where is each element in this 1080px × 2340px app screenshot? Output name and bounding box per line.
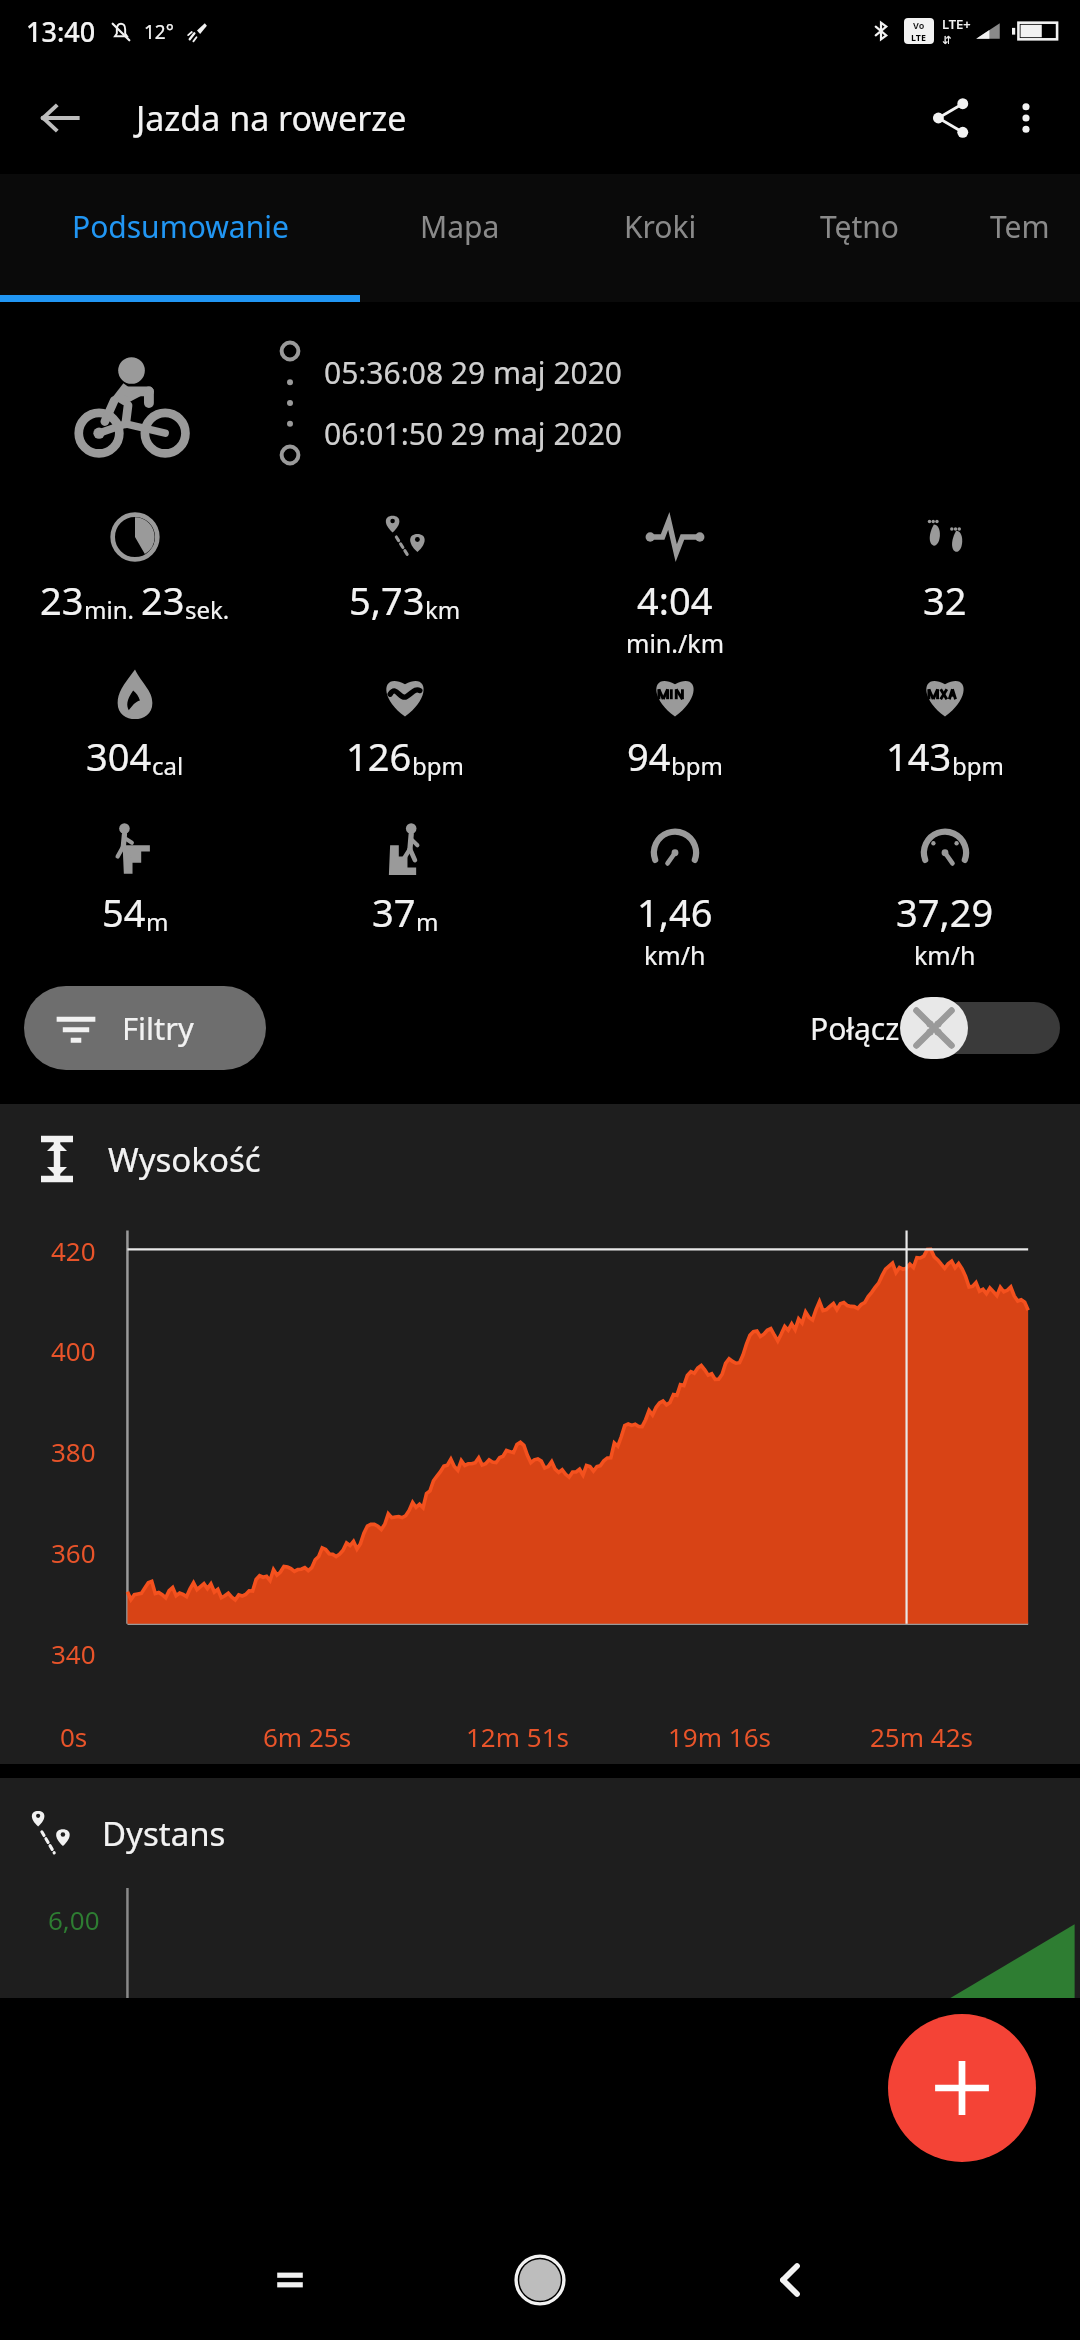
staticText: 23 [141, 574, 185, 626]
staticText: 19m 16s [668, 1719, 772, 1754]
button[interactable]: Mapa [360, 174, 560, 302]
staticText: 126 [346, 730, 412, 782]
staticText: Jazda na rowerze [136, 95, 407, 141]
staticText: 94 [627, 730, 671, 782]
staticText: 0s [60, 1719, 88, 1754]
button[interactable]: Home [480, 2220, 600, 2340]
button[interactable]: 37 [270, 810, 540, 966]
button[interactable]: Share [912, 79, 990, 157]
button[interactable]: 54 [0, 810, 270, 966]
staticText: 12m 51s [466, 1719, 570, 1754]
staticText: Vo [913, 19, 925, 31]
staticText: 05:36:08 29 maj 2020 [324, 352, 623, 393]
staticText: 13:40 [26, 13, 96, 50]
staticText: 06:01:50 29 maj 2020 [324, 413, 623, 454]
staticText: 5,73 [349, 574, 425, 626]
staticText: min./km [626, 626, 725, 654]
staticText: km/h [644, 938, 706, 966]
staticText: Podsumowanie [72, 206, 289, 247]
button[interactable]: 143 [810, 654, 1080, 810]
staticText: 143 [886, 730, 952, 782]
staticText: Połącz [810, 1008, 900, 1049]
button[interactable]: 5,73 [270, 498, 540, 654]
button[interactable]: 304 [0, 654, 270, 810]
staticText: 340 [51, 1636, 96, 1671]
staticText: bpm [412, 749, 464, 782]
staticText: km [425, 593, 461, 626]
staticText: 380 [51, 1434, 96, 1469]
button[interactable]: Recents [230, 2220, 350, 2340]
staticText: 6m 25s [263, 1719, 352, 1754]
staticText: 304 [86, 730, 152, 782]
staticText: 6,00 [48, 1902, 100, 1937]
staticText: m [146, 905, 169, 938]
button[interactable]: Add [888, 2014, 1036, 2162]
staticText: Wysokość [108, 1137, 261, 1182]
button[interactable]: 126 [270, 654, 540, 810]
button[interactable]: Back [730, 2220, 850, 2340]
staticText: 25m 42s [870, 1719, 974, 1754]
button[interactable]: Tem [960, 174, 1080, 302]
button[interactable]: Back [24, 82, 96, 154]
staticText: Filtry [122, 1007, 194, 1049]
button[interactable]: 37,29 [810, 810, 1080, 966]
staticText: 12° [144, 19, 174, 45]
staticText: bpm [952, 749, 1004, 782]
button[interactable]: More options [990, 82, 1062, 154]
button[interactable]: Połącz [810, 997, 1060, 1059]
staticText: 4:04 [637, 574, 713, 626]
button[interactable]: 23 [0, 498, 270, 654]
staticText: LTE [911, 31, 927, 43]
staticText: LTE+ [942, 15, 971, 33]
staticText: ⇵ [942, 34, 952, 47]
staticText: 54 [102, 886, 146, 938]
button[interactable]: 4:04 [540, 498, 810, 654]
button[interactable]: 94 [540, 654, 810, 810]
staticText: Tętno [820, 206, 900, 247]
staticText: Tem [990, 206, 1050, 247]
staticText: 32 [923, 574, 967, 626]
staticText: 37,29 [896, 886, 994, 938]
button[interactable]: Kroki [560, 174, 760, 302]
staticText: 400 [51, 1333, 96, 1368]
button[interactable]: Filtry [24, 986, 266, 1070]
staticText: km/h [914, 938, 976, 966]
staticText: 1,46 [637, 886, 713, 938]
button[interactable]: Podsumowanie [0, 174, 360, 302]
staticText: Mapa [420, 206, 500, 247]
staticText: Kroki [624, 206, 697, 247]
staticText: 360 [51, 1535, 96, 1570]
staticText: 37 [372, 886, 416, 938]
staticText: min. [84, 593, 141, 626]
staticText: sek. [185, 593, 230, 626]
button[interactable]: Tętno [760, 174, 960, 302]
staticText: Dystans [102, 1811, 226, 1856]
staticText: cal [152, 749, 184, 782]
staticText: bpm [671, 749, 723, 782]
button[interactable]: 32 [810, 498, 1080, 654]
staticText: 420 [51, 1233, 96, 1268]
staticText: m [416, 905, 439, 938]
staticText: 23 [40, 574, 84, 626]
button[interactable]: 1,46 [540, 810, 810, 966]
